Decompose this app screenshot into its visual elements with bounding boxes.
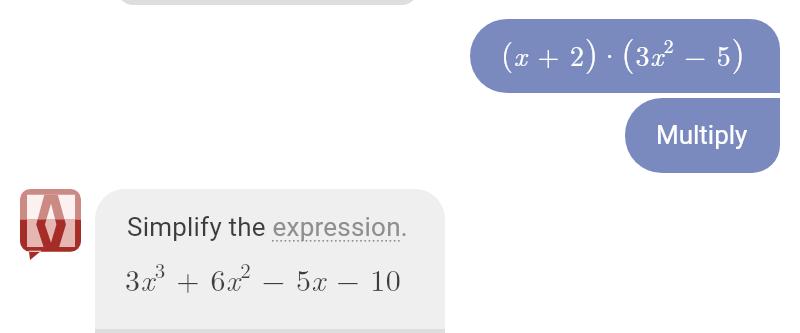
staticText: Simplify the expression.: [127, 212, 408, 242]
staticText: Multiply: [656, 120, 748, 150]
button[interactable]: Multiply: [625, 98, 780, 173]
staticText: (x + 2)·(3x2 − 5): [501, 26, 746, 75]
button[interactable]: [117, 0, 418, 5]
button[interactable]: (x + 2)·(3x2 − 5): [470, 19, 780, 93]
button[interactable]: Simplify the expression.: [95, 189, 445, 333]
other: Mathway: [20, 189, 81, 260]
staticText: 3x3 + 6x2 − 5x − 10: [125, 254, 402, 300]
